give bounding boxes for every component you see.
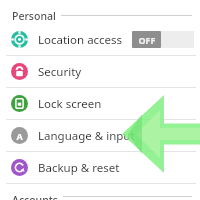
staticText: A xyxy=(16,130,23,142)
staticText: Security xyxy=(38,64,82,80)
staticText: Accounts xyxy=(12,193,58,200)
other: Pointer highlighting Language & input xyxy=(0,0,200,200)
button[interactable]: Location access xyxy=(0,24,200,55)
staticText: Backup & reset xyxy=(38,160,120,176)
button[interactable]: Backup & reset xyxy=(0,152,200,183)
staticText: Personal xyxy=(12,9,56,23)
staticText: OFF xyxy=(138,34,156,46)
button[interactable]: A xyxy=(0,120,200,151)
button[interactable]: Security xyxy=(0,56,200,87)
button[interactable]: Lock screen xyxy=(0,88,200,119)
staticText: Lock screen xyxy=(38,96,102,112)
button[interactable]: Location access off xyxy=(132,31,194,48)
staticText: Location access xyxy=(38,32,123,48)
staticText: Language & input xyxy=(38,128,135,144)
